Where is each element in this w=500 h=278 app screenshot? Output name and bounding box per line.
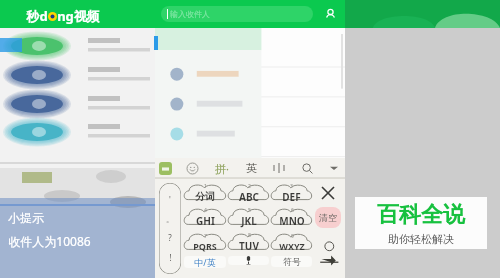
staticText: 百科全说 — [377, 201, 465, 229]
staticText: 英 — [246, 161, 257, 175]
staticText: GHI — [196, 214, 215, 228]
staticText: 2 — [248, 183, 251, 190]
staticText: PQRS — [193, 240, 217, 252]
staticText: 拼· — [215, 161, 229, 176]
staticText: 清空 — [319, 212, 337, 223]
button[interactable]: 5 — [228, 206, 269, 229]
staticText: JKL — [241, 214, 257, 228]
staticText: 9 — [291, 233, 294, 240]
staticText: 中/英 — [194, 256, 216, 268]
button[interactable]: 符号 — [271, 256, 312, 267]
staticText: 输入收件人 — [170, 9, 210, 19]
staticText: DEF — [282, 190, 301, 204]
button[interactable]: 3 — [271, 182, 312, 204]
staticText: 1 — [204, 183, 207, 190]
button[interactable]: ' — [159, 183, 181, 274]
staticText: TUV — [239, 239, 259, 253]
button[interactable]: Enter — [315, 232, 341, 274]
staticText: ? — [168, 232, 172, 243]
button[interactable]: 2 — [228, 182, 269, 204]
staticText: ' — [169, 194, 171, 205]
staticText: 。 — [166, 214, 174, 224]
button[interactable]: 清空 — [315, 207, 341, 228]
button[interactable]: Delete — [315, 183, 341, 203]
button[interactable]: 7 — [184, 231, 226, 254]
button[interactable]: 6 — [271, 206, 312, 229]
staticText: ! — [169, 252, 172, 263]
button[interactable] — [228, 256, 269, 265]
staticText: 3 — [290, 183, 293, 190]
staticText: 5 — [248, 207, 251, 214]
button[interactable]: 4 — [184, 206, 226, 229]
staticText: ng视频 — [57, 7, 100, 25]
button[interactable]: Search — [300, 161, 314, 175]
staticText: 8 — [248, 232, 251, 239]
button[interactable]: Emoji — [185, 161, 199, 175]
button[interactable]: 百科全说 — [355, 197, 487, 249]
button[interactable]: 中/英 — [184, 256, 226, 268]
button[interactable]: 输入收件人 — [161, 6, 313, 22]
button[interactable]: 8 — [228, 231, 269, 254]
staticText: 收件人为10086 — [8, 233, 91, 249]
button[interactable]: 拼· — [213, 161, 231, 176]
staticText: 6 — [291, 207, 294, 214]
button[interactable]: Contacts — [321, 5, 339, 23]
button[interactable]: Layout — [272, 161, 286, 175]
staticText: 7 — [204, 233, 207, 240]
button[interactable]: 英 — [244, 161, 259, 175]
button[interactable]: Keyboard theme — [159, 162, 172, 175]
staticText: ABC — [239, 190, 259, 204]
staticText: 分词 — [195, 190, 215, 203]
staticText: MNO — [279, 214, 305, 228]
button[interactable]: 1 — [184, 182, 226, 204]
staticText: 4 — [204, 207, 207, 214]
button[interactable]: More — [327, 161, 341, 175]
staticText: 秒d — [26, 7, 48, 25]
button[interactable]: 9 — [271, 231, 312, 254]
staticText: 助你轻松解决 — [388, 232, 454, 246]
staticText: WXYZ — [279, 240, 305, 252]
staticText: 小提示 — [8, 210, 44, 225]
staticText: 符号 — [283, 256, 301, 267]
